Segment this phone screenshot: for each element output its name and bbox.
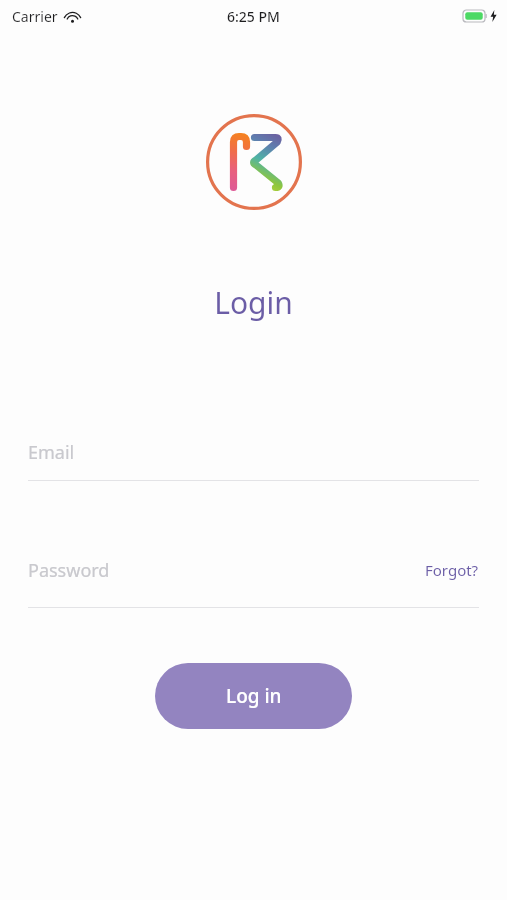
staticText: 6:25 PM [227, 7, 280, 26]
staticText: Login [0, 282, 507, 323]
button[interactable]: Forgot? [415, 553, 479, 587]
button[interactable]: Log in [155, 663, 352, 729]
other: App logo [204, 112, 304, 212]
button[interactable]: Password [28, 553, 415, 587]
staticText: Forgot? [425, 560, 479, 580]
staticText: Log in [226, 683, 282, 709]
staticText: Email [28, 440, 75, 465]
staticText: Password [28, 558, 110, 583]
button[interactable]: Email [28, 435, 479, 481]
staticText: Carrier [12, 7, 58, 26]
